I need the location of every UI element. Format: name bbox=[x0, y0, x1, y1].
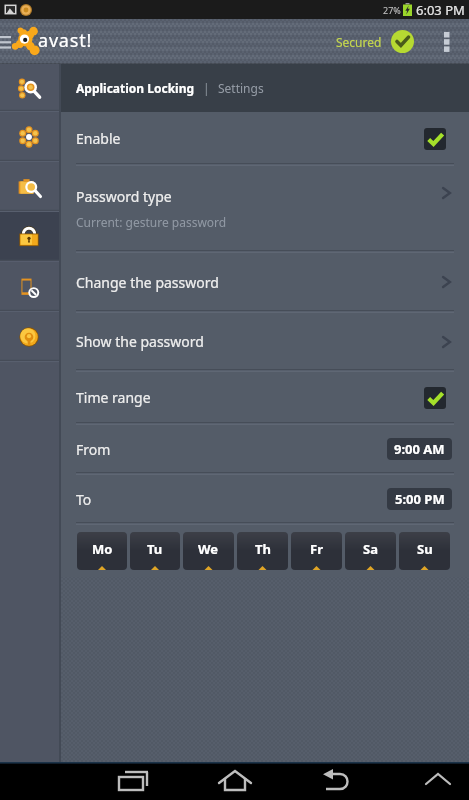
staticText: Tu bbox=[147, 540, 163, 558]
button[interactable]: Hide navigation bbox=[413, 762, 463, 800]
button[interactable]: Home bbox=[210, 762, 260, 800]
button[interactable]: More options bbox=[433, 19, 461, 64]
button[interactable]: Anti-theft bbox=[0, 262, 59, 312]
button[interactable]: Tu bbox=[130, 532, 180, 570]
button[interactable]: Time range bbox=[61, 371, 469, 424]
button[interactable]: Menu bbox=[0, 19, 12, 64]
button[interactable]: Fr bbox=[291, 532, 342, 570]
button[interactable]: Th bbox=[237, 532, 288, 570]
staticText: Time range bbox=[76, 388, 151, 407]
staticText: avast! bbox=[38, 28, 93, 53]
staticText: Sa bbox=[363, 540, 378, 558]
button[interactable]: Sa bbox=[345, 532, 396, 570]
staticText: Show the password bbox=[76, 332, 204, 351]
staticText: 6:03 PM bbox=[416, 1, 465, 19]
staticText: Password type bbox=[76, 187, 172, 206]
button[interactable]: Show the password bbox=[61, 312, 469, 371]
staticText: Secured bbox=[336, 34, 382, 50]
button[interactable]: Back bbox=[312, 762, 362, 800]
button[interactable]: App insights bbox=[0, 162, 59, 212]
button[interactable]: Mo bbox=[77, 532, 127, 570]
staticText: To bbox=[76, 490, 92, 509]
button[interactable]: We bbox=[183, 532, 234, 570]
staticText: Change the password bbox=[76, 273, 219, 292]
staticText: From bbox=[76, 440, 111, 459]
button[interactable]: Support bbox=[0, 312, 59, 362]
staticText: | bbox=[203, 80, 210, 96]
button[interactable]: Secured bbox=[333, 30, 417, 53]
staticText: We bbox=[198, 540, 219, 558]
staticText: Current: gesture password bbox=[76, 214, 227, 230]
staticText: Su bbox=[417, 540, 433, 558]
button[interactable]: Recent apps bbox=[108, 762, 158, 800]
staticText: Enable bbox=[76, 129, 121, 148]
button[interactable]: Password type bbox=[61, 165, 469, 252]
button[interactable]: Change the password bbox=[61, 252, 469, 312]
button[interactable]: Scan bbox=[0, 64, 59, 112]
button[interactable]: From bbox=[61, 424, 469, 474]
button[interactable]: Network security bbox=[0, 112, 59, 162]
button[interactable]: App locking bbox=[0, 212, 59, 262]
staticText: Application Locking bbox=[76, 80, 195, 96]
staticText: Fr bbox=[310, 540, 323, 558]
staticText: 27% bbox=[383, 4, 401, 16]
button[interactable]: To bbox=[61, 474, 469, 524]
button[interactable]: Su bbox=[399, 532, 450, 570]
staticText: Mo bbox=[92, 540, 113, 558]
staticText: Th bbox=[255, 540, 271, 558]
staticText: 5:00 PM bbox=[395, 490, 445, 508]
staticText: 9:00 AM bbox=[394, 440, 445, 458]
button[interactable]: Enable bbox=[61, 112, 469, 165]
staticText: Settings bbox=[218, 80, 264, 96]
